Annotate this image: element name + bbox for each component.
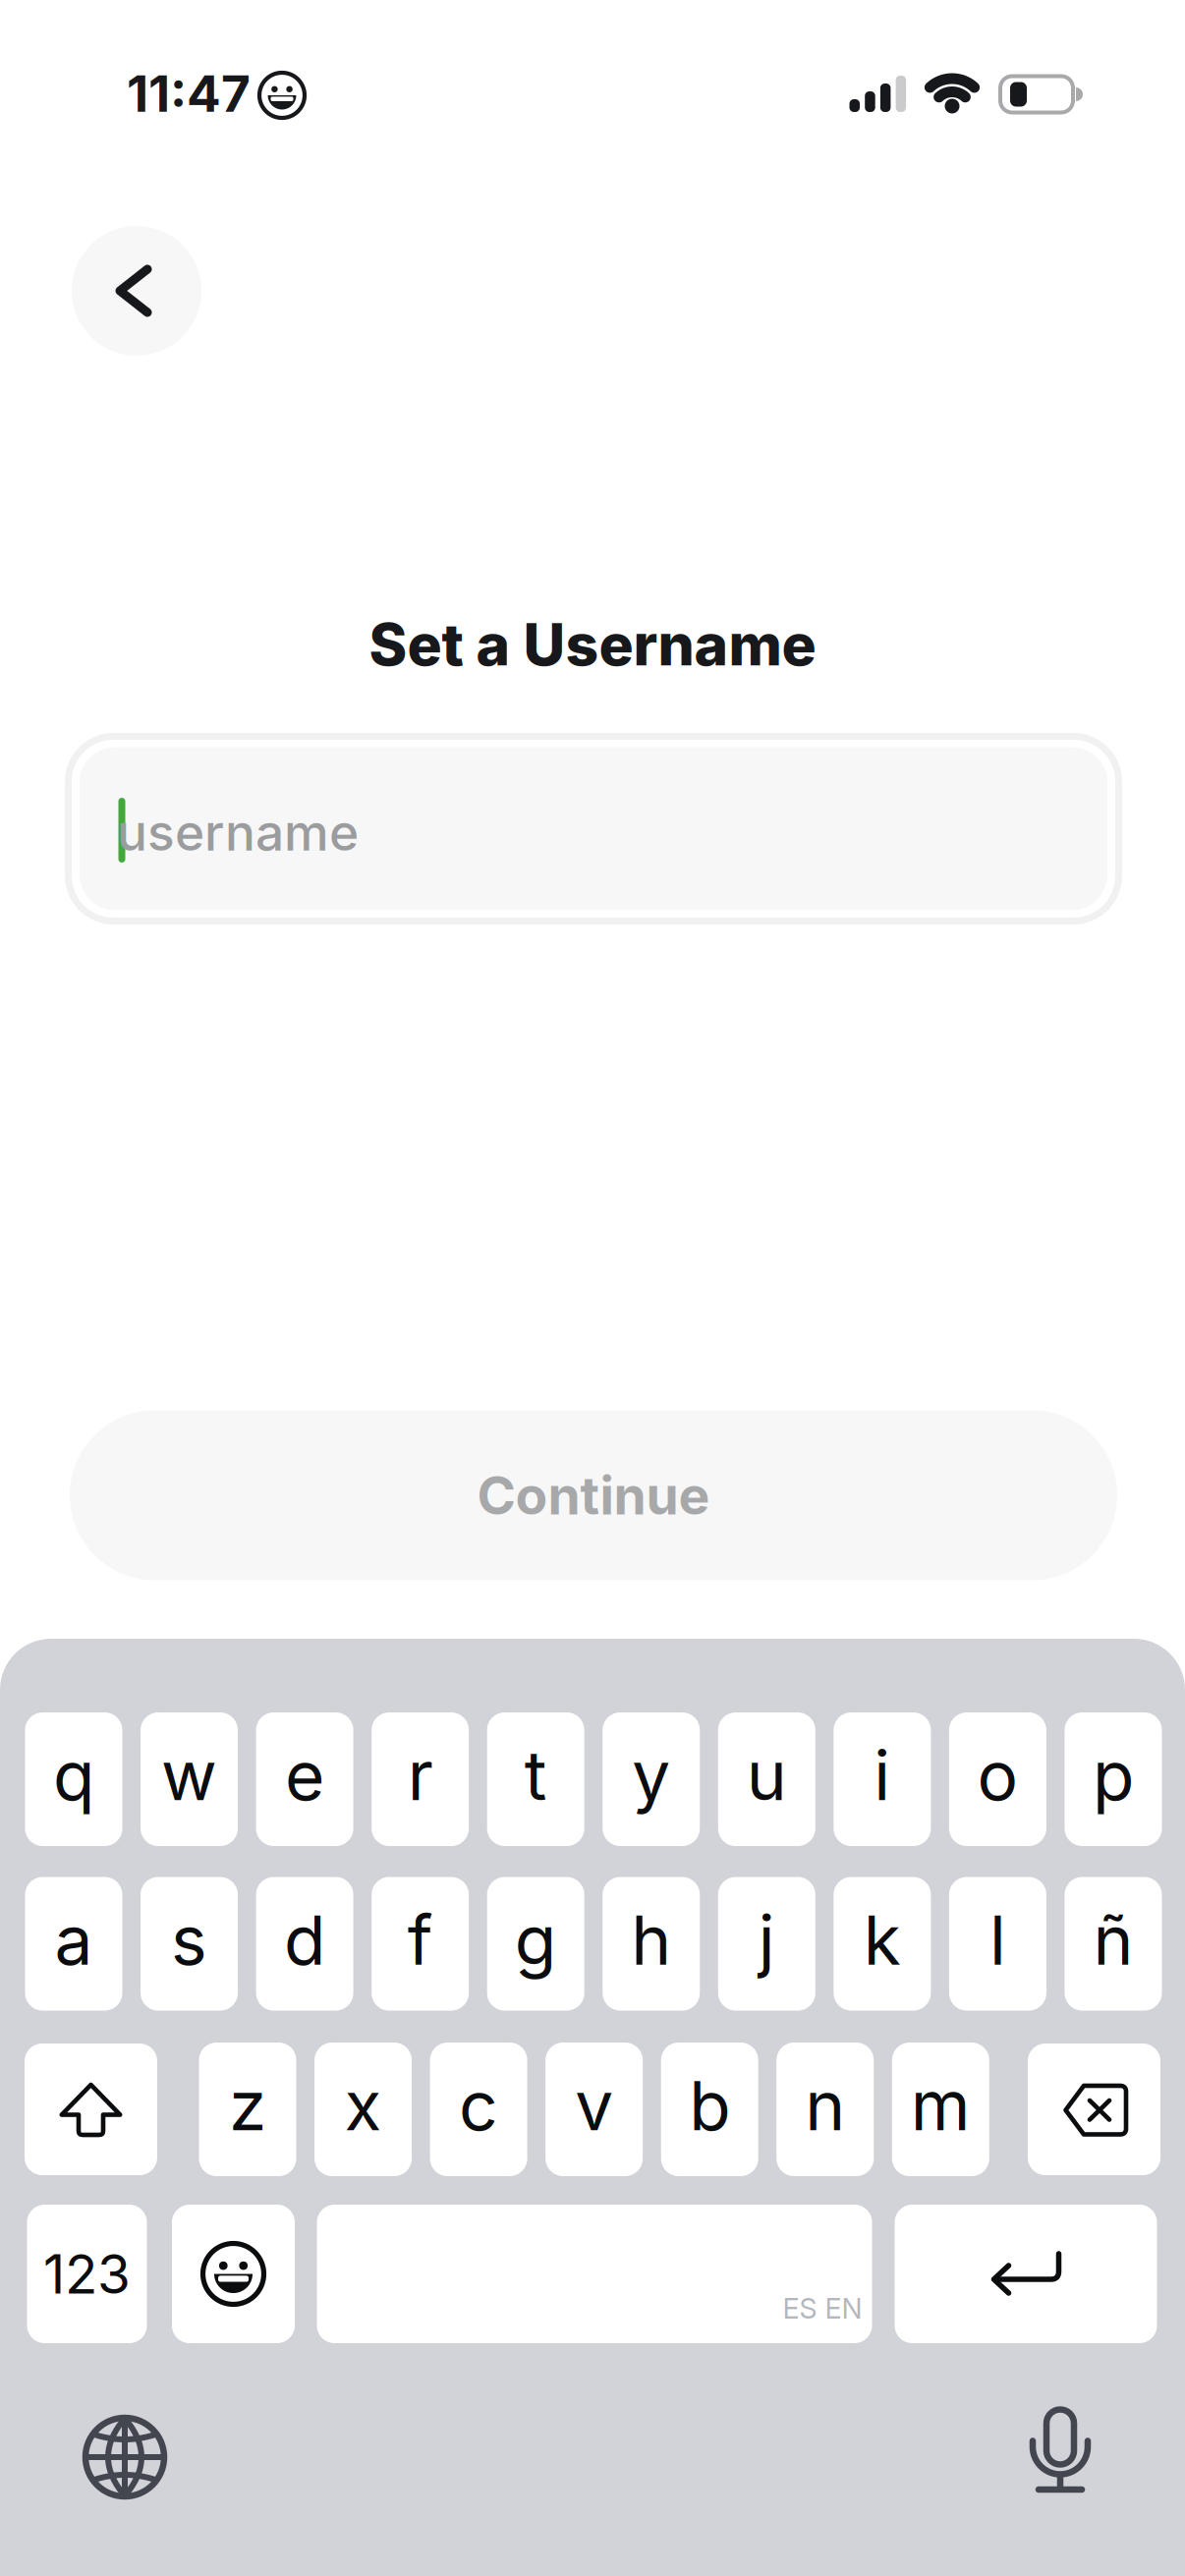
staticText: 11:47 — [127, 63, 251, 124]
button[interactable]: d — [256, 1877, 353, 2011]
staticText: t — [524, 1734, 547, 1817]
button[interactable]: Emoji — [172, 2205, 295, 2343]
button[interactable]: h — [603, 1877, 700, 2011]
staticText: w — [161, 1734, 217, 1817]
button[interactable]: Numbers — [27, 2205, 147, 2343]
button[interactable]: e — [256, 1712, 353, 1846]
button[interactable]: o — [949, 1712, 1046, 1846]
staticText: c — [459, 2064, 498, 2147]
staticText: b — [689, 2064, 730, 2147]
staticText: l — [989, 1899, 1006, 1981]
staticText: q — [53, 1734, 94, 1817]
staticText: ES EN — [783, 2291, 862, 2325]
staticText: j — [758, 1899, 775, 1981]
button[interactable]: s — [141, 1877, 238, 2011]
staticText: a — [55, 1899, 93, 1981]
button[interactable]: Space — [317, 2205, 872, 2343]
staticText: k — [864, 1899, 901, 1981]
staticText: n — [805, 2064, 845, 2147]
button[interactable]: m — [892, 2043, 989, 2176]
staticText: h — [631, 1899, 671, 1981]
button[interactable]: Next keyboard — [81, 2413, 169, 2501]
staticText: ñ — [1093, 1899, 1133, 1981]
button[interactable]: p — [1065, 1712, 1162, 1846]
button[interactable]: Shift — [25, 2044, 157, 2175]
button[interactable]: t — [487, 1712, 584, 1846]
staticText: f — [407, 1899, 433, 1981]
staticText: p — [1093, 1734, 1134, 1817]
button[interactable]: r — [372, 1712, 469, 1846]
staticText: x — [344, 2064, 382, 2147]
button[interactable]: k — [834, 1877, 931, 2011]
staticText: r — [407, 1734, 433, 1817]
button[interactable]: z — [199, 2043, 296, 2176]
staticText: d — [284, 1899, 325, 1981]
button[interactable]: q — [25, 1712, 122, 1846]
button[interactable]: f — [372, 1877, 469, 2011]
button[interactable]: Delete — [1028, 2044, 1160, 2175]
button[interactable]: Back — [72, 226, 201, 356]
staticText: u — [747, 1734, 787, 1817]
button[interactable]: c — [430, 2043, 527, 2176]
staticText: v — [575, 2064, 613, 2147]
button[interactable]: n — [776, 2043, 874, 2176]
button[interactable]: w — [141, 1712, 238, 1846]
staticText: y — [632, 1734, 670, 1817]
button[interactable]: username — [68, 736, 1119, 921]
button[interactable]: Dictation — [1026, 2404, 1095, 2497]
staticText: Continue — [477, 1464, 710, 1527]
staticText: Set a Username — [369, 610, 816, 679]
staticText: g — [515, 1899, 557, 1981]
button[interactable]: y — [603, 1712, 700, 1846]
staticText: 123 — [43, 2241, 131, 2306]
button[interactable]: g — [487, 1877, 584, 2011]
button[interactable]: Continue — [70, 1410, 1117, 1580]
staticText: i — [874, 1734, 891, 1817]
staticText: m — [911, 2064, 971, 2147]
button[interactable]: ñ — [1065, 1877, 1162, 2011]
staticText: z — [229, 2064, 266, 2147]
button[interactable]: l — [949, 1877, 1046, 2011]
staticText: username — [117, 802, 359, 863]
button[interactable]: j — [718, 1877, 815, 2011]
button[interactable]: v — [545, 2043, 643, 2176]
button[interactable]: Return — [895, 2205, 1157, 2343]
button[interactable]: b — [661, 2043, 758, 2176]
staticText: o — [977, 1734, 1018, 1817]
button[interactable]: x — [315, 2043, 412, 2176]
staticText: e — [285, 1734, 324, 1817]
button[interactable]: a — [25, 1877, 122, 2011]
staticText: s — [171, 1899, 207, 1981]
button[interactable]: u — [718, 1712, 815, 1846]
button[interactable]: i — [834, 1712, 931, 1846]
